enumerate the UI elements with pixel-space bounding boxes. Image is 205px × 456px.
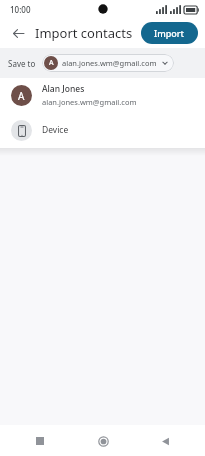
staticText: alan.jones.wm@gmail.com: [42, 97, 137, 107]
button[interactable]: Back: [7, 22, 29, 44]
button[interactable]: A: [0, 78, 205, 112]
staticText: Alan Jones: [42, 83, 85, 95]
button[interactable]: Device: [0, 112, 205, 148]
staticText: 10:00: [10, 4, 31, 15]
button[interactable]: Recent apps: [28, 429, 52, 453]
staticText: Save to: [8, 58, 36, 69]
staticText: alan.jones.wm@gmail.com: [62, 58, 157, 68]
button[interactable]: Import: [141, 22, 198, 44]
staticText: Import: [154, 27, 185, 39]
button[interactable]: Home: [91, 429, 115, 453]
button[interactable]: Back: [153, 429, 177, 453]
staticText: A: [49, 58, 54, 68]
staticText: Import contacts: [35, 24, 133, 42]
button[interactable]: A: [42, 54, 174, 72]
staticText: A: [18, 89, 25, 103]
staticText: Device: [42, 124, 69, 136]
